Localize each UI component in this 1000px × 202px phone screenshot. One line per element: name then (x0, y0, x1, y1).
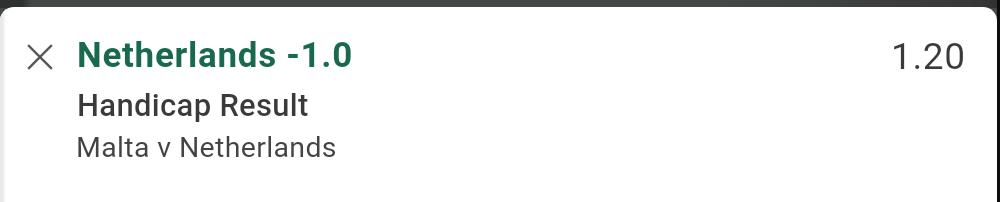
button[interactable]: Remove selection (16, 33, 63, 80)
staticText: Malta v Netherlands (76, 131, 337, 164)
staticText: Handicap Result (77, 87, 309, 123)
staticText: Netherlands -1.0 (77, 35, 354, 76)
staticText: 1.20 (891, 35, 966, 78)
button[interactable]: Netherlands -1.0 (64, 28, 924, 168)
